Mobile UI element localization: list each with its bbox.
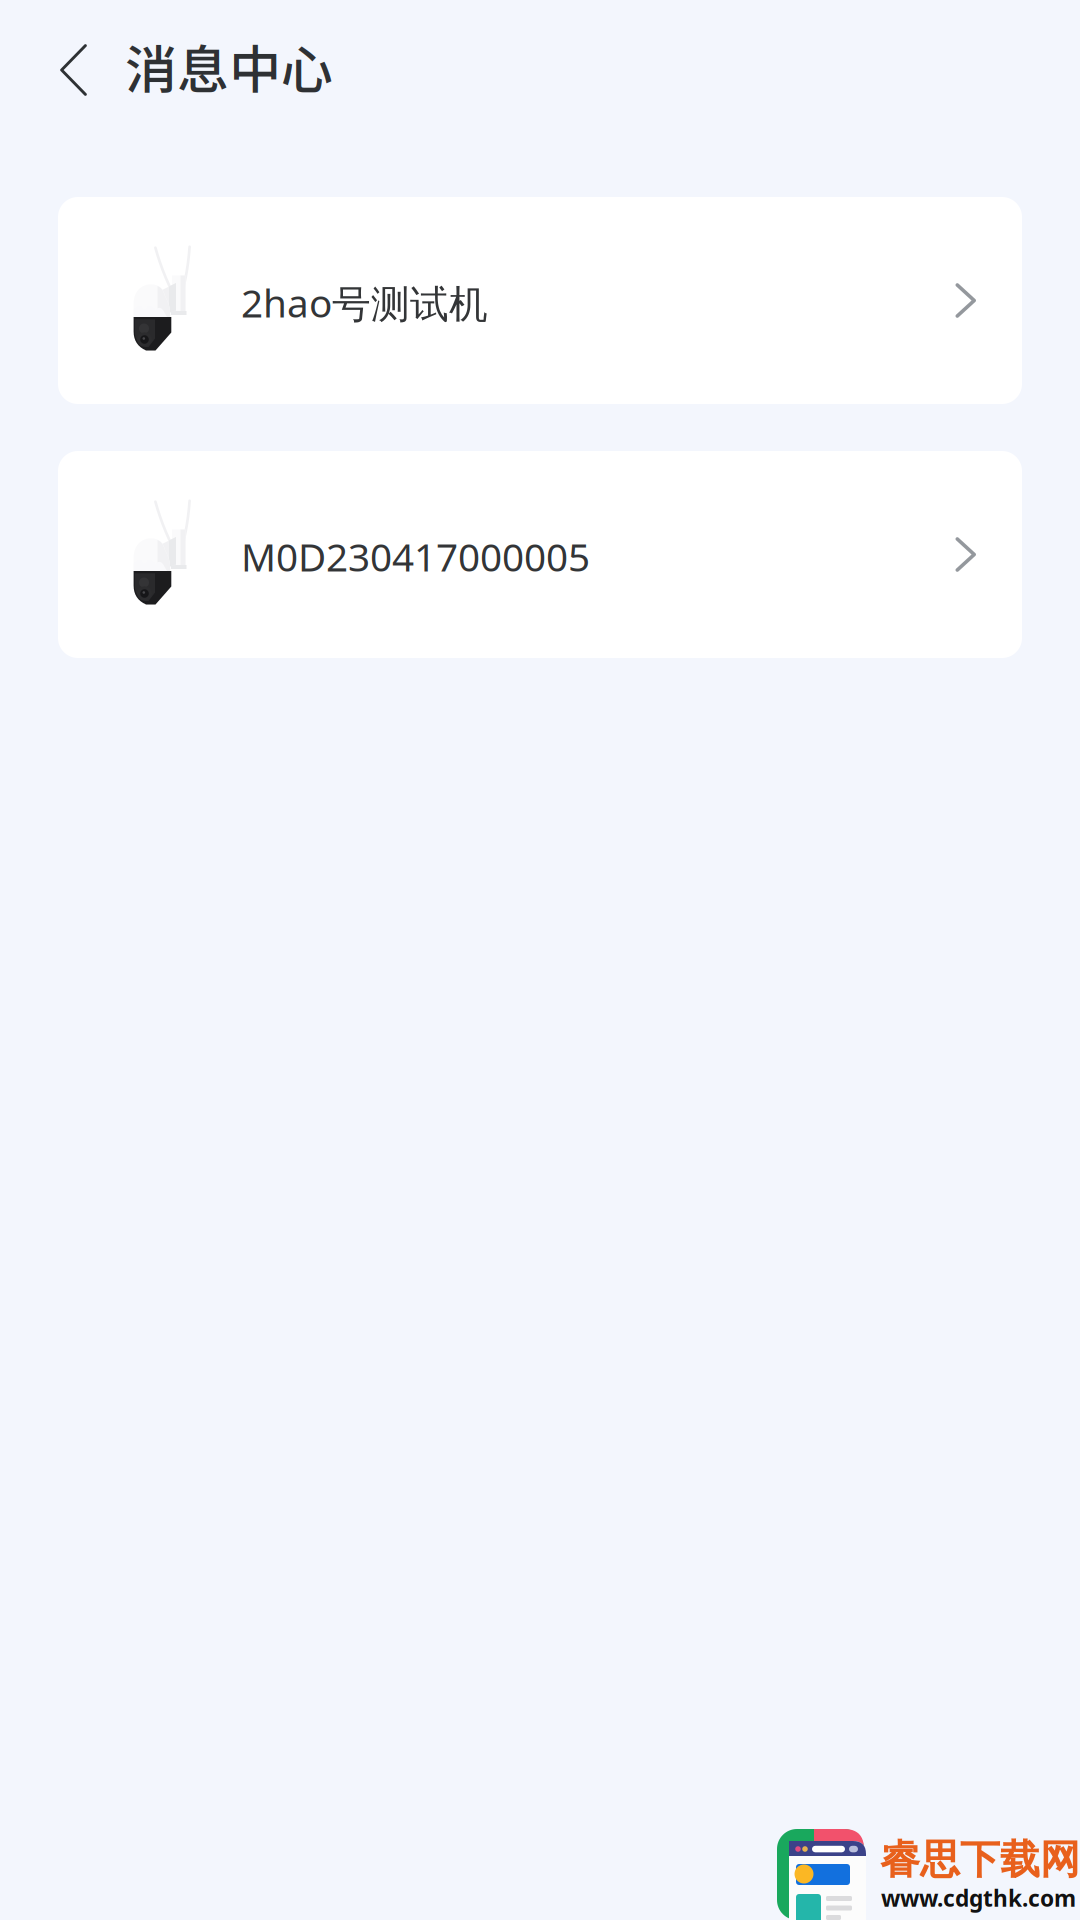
staticText: M0D230417000005 [241,531,590,582]
button[interactable]: 2hao号测试机 [58,197,1022,404]
button[interactable]: M0D230417000005 [58,451,1022,658]
staticText: 睿思下载网 [880,1835,1080,1884]
button[interactable]: Back [0,22,125,118]
staticText: 消息中心 [125,28,333,104]
staticText: 2hao号测试机 [241,277,488,328]
staticText: www.cdgthk.com [881,1883,1076,1913]
